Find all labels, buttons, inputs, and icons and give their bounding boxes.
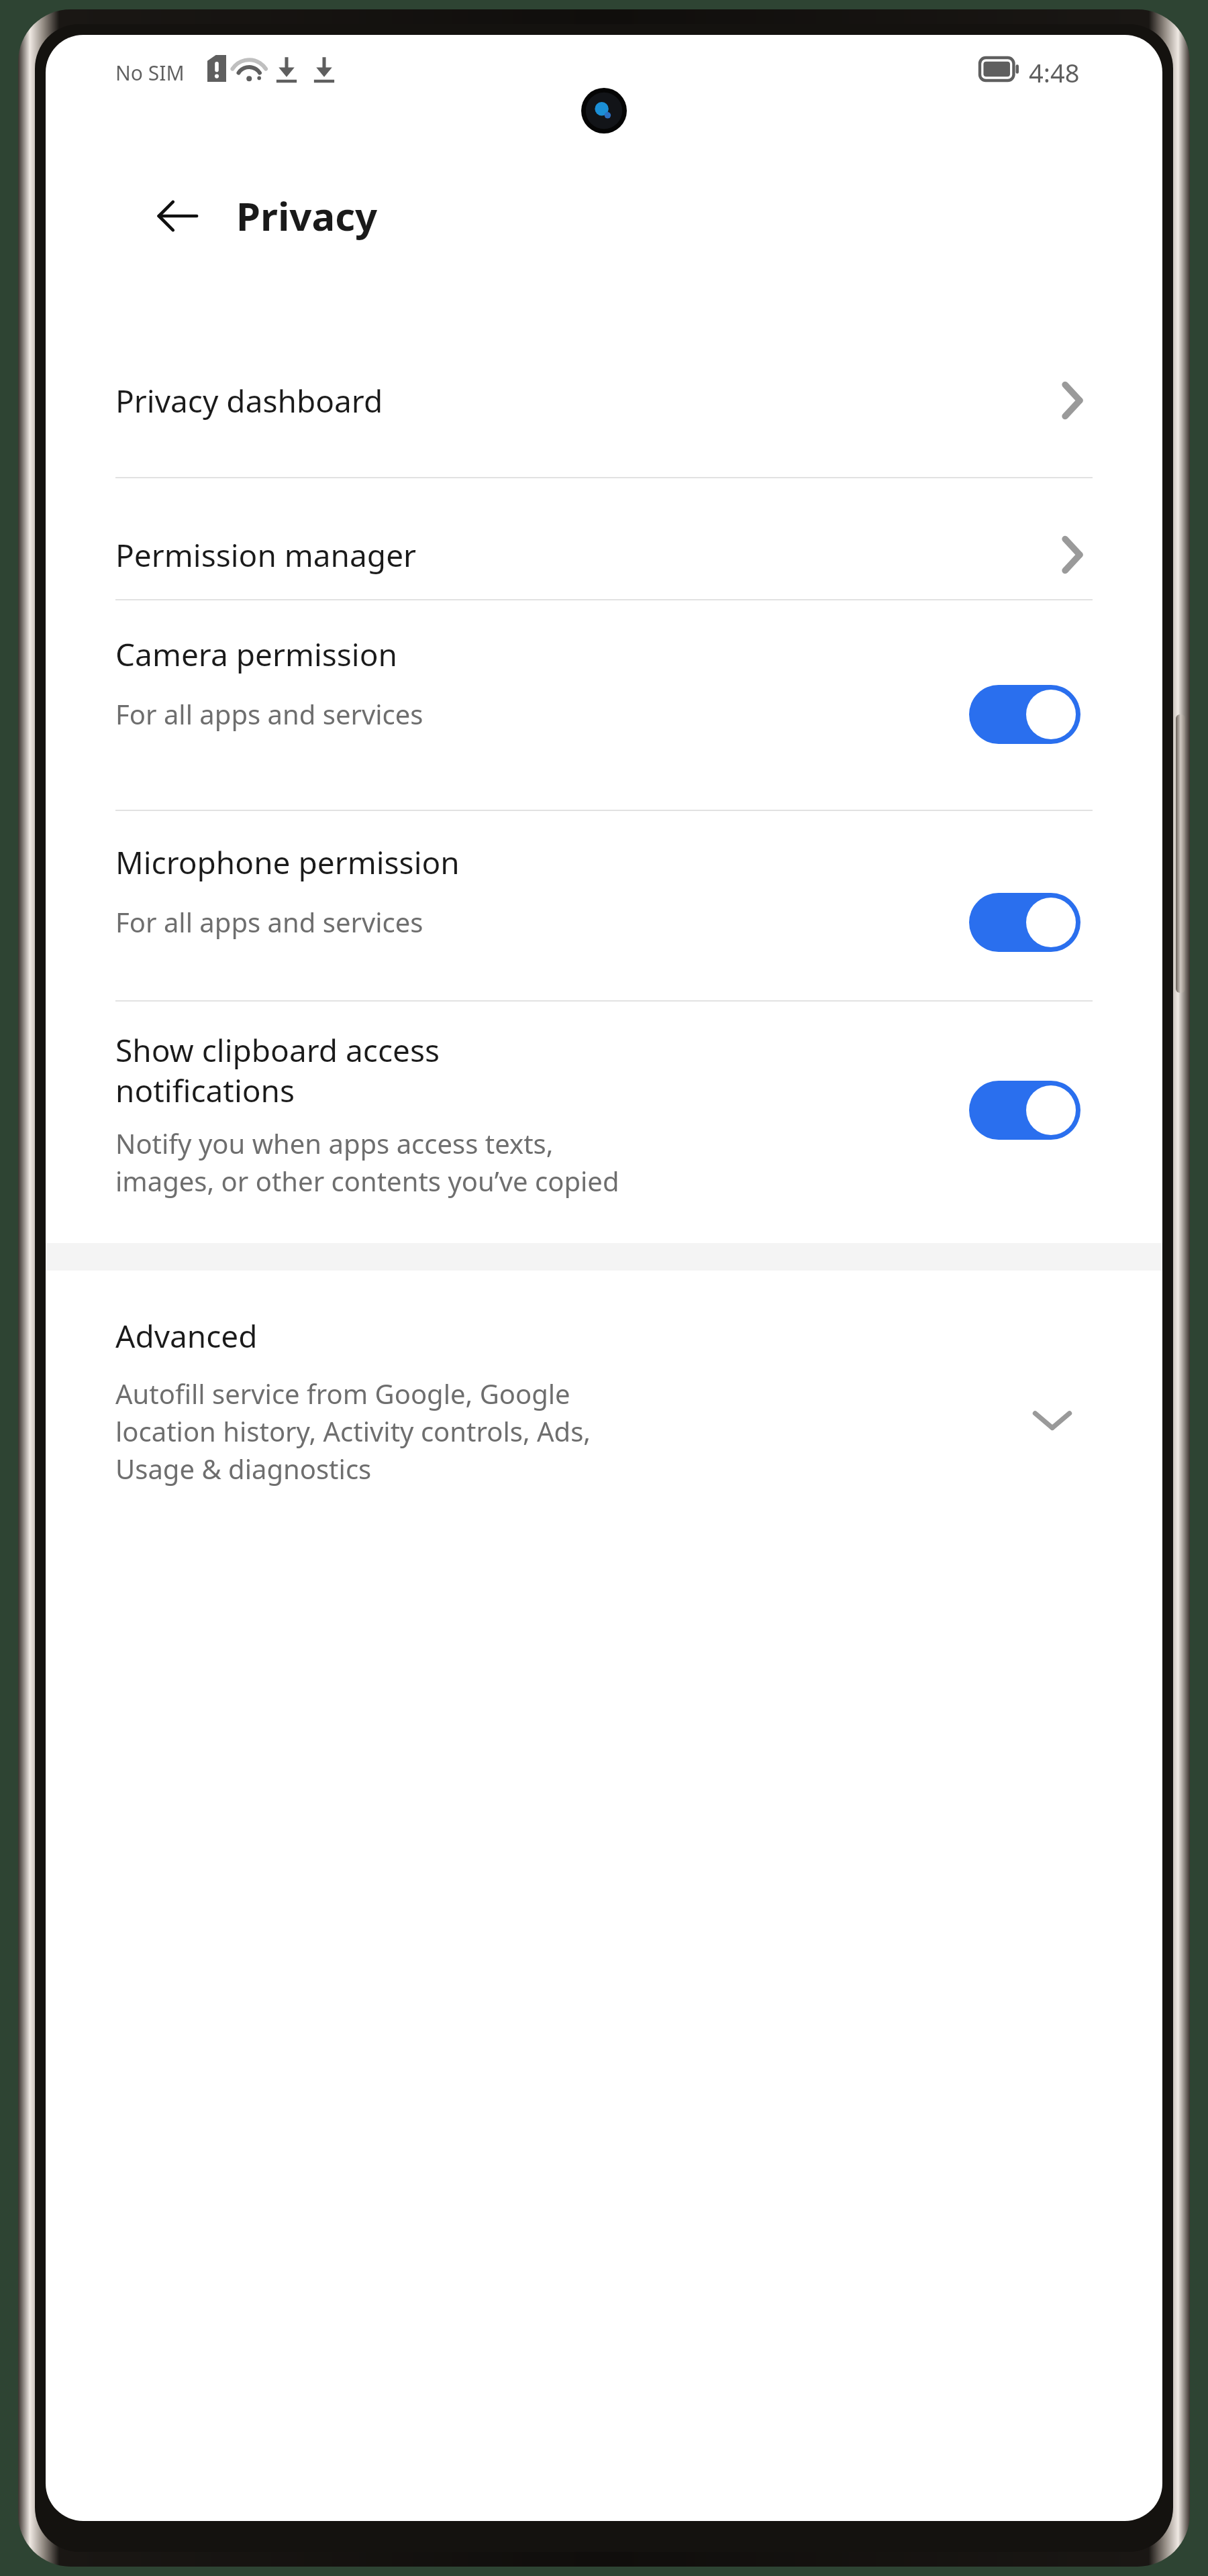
button[interactable]: Toggle on [969, 892, 1080, 953]
staticText: Autofill service from Google, Google loc… [115, 1375, 840, 1487]
button[interactable] [46, 1001, 1162, 1242]
staticText: Notify you when apps access texts, image… [115, 1125, 854, 1199]
button[interactable] [46, 1271, 1162, 1492]
staticText: 4:48 [1029, 55, 1080, 90]
staticText: For all apps and services [115, 696, 423, 732]
button[interactable] [46, 810, 1162, 978]
staticText: Show clipboard access notifications [115, 1029, 753, 1112]
button[interactable] [46, 600, 1162, 767]
button[interactable]: Back [145, 184, 209, 248]
button[interactable]: Toggle on [969, 684, 1080, 745]
staticText: Privacy dashboard [115, 380, 383, 422]
staticText: Camera permission [115, 633, 397, 676]
button[interactable]: Toggle on [969, 1080, 1080, 1140]
staticText: Privacy [236, 189, 378, 242]
button[interactable]: Privacy dashboard [46, 323, 1162, 478]
staticText: Microphone permission [115, 841, 460, 883]
staticText: For all apps and services [115, 904, 423, 940]
staticText: No SIM [115, 59, 185, 87]
button[interactable]: Permission manager [46, 478, 1162, 632]
staticText: Advanced [115, 1315, 258, 1357]
staticText: Permission manager [115, 534, 417, 576]
